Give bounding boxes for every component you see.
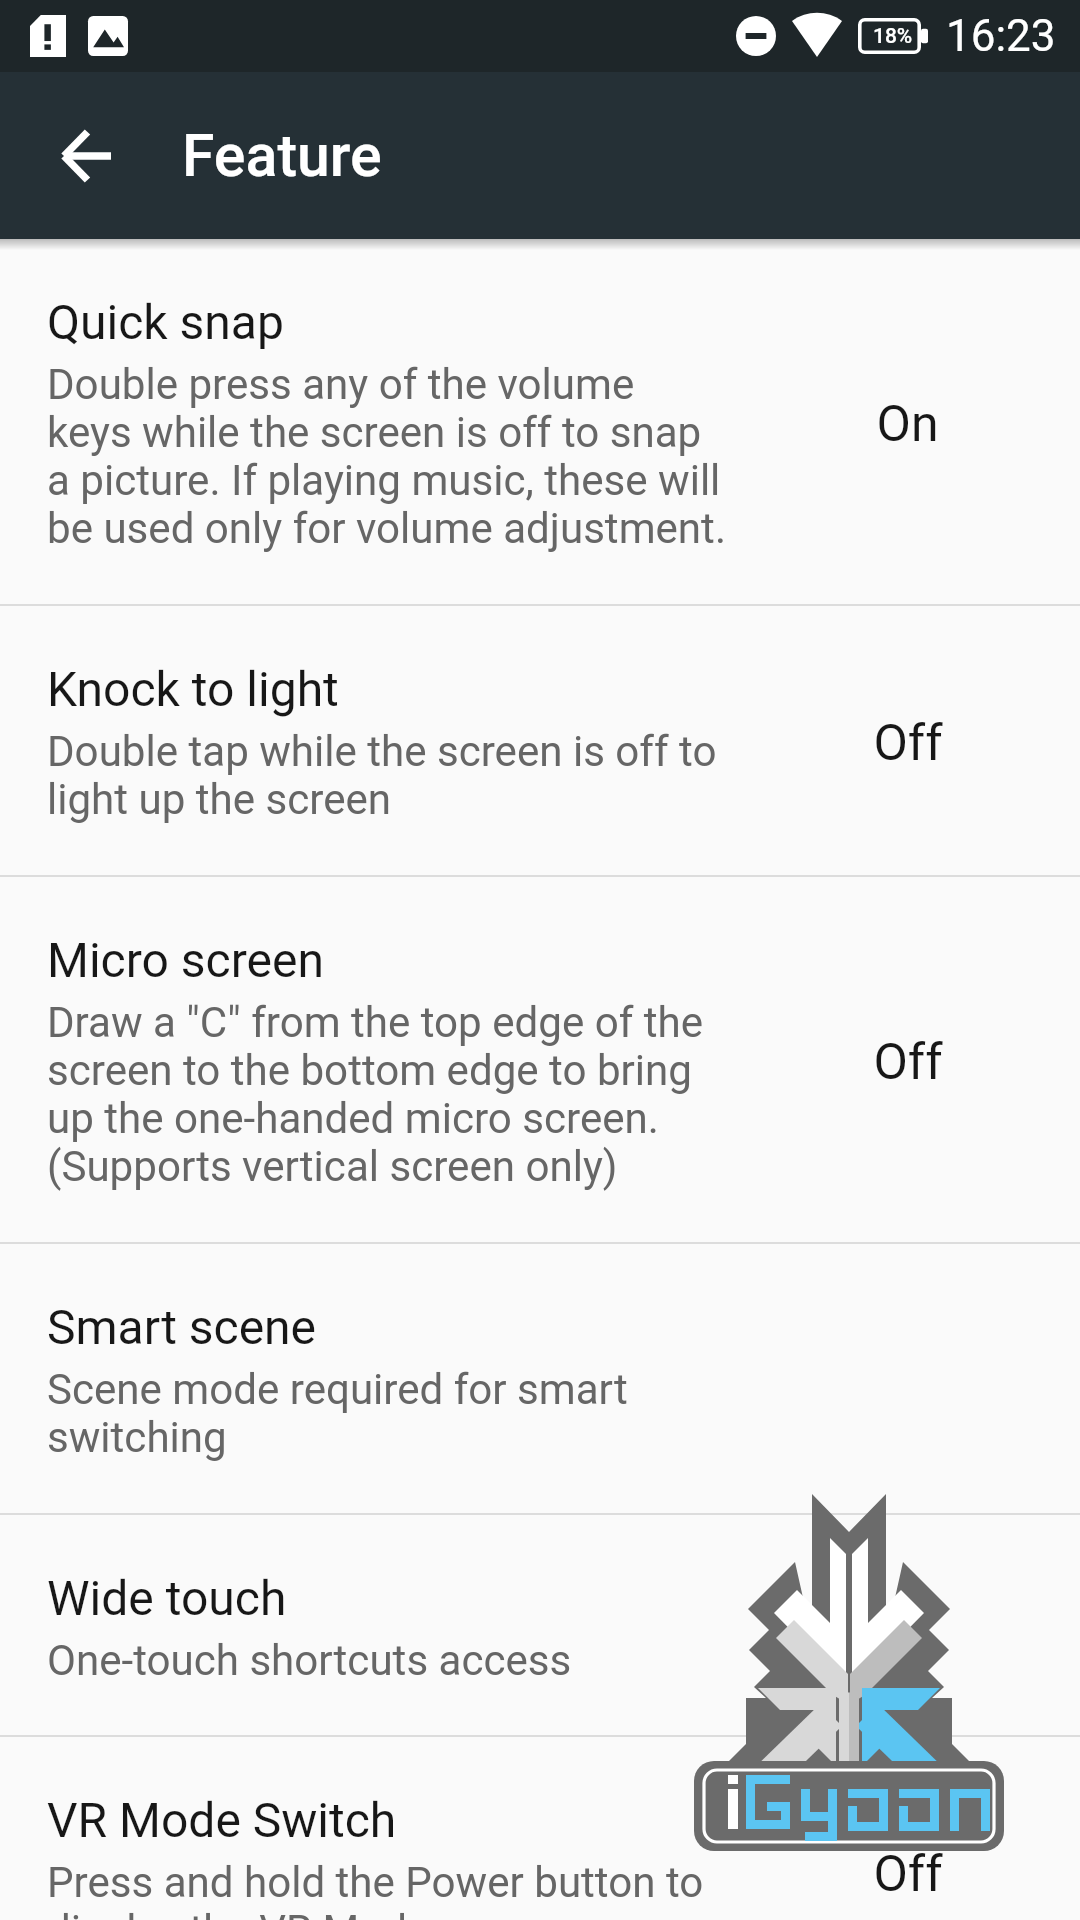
staticText: Double tap while the screen is off to li… xyxy=(47,727,717,825)
staticText: Off xyxy=(873,1845,943,1904)
staticText: 16:23 xyxy=(946,10,1056,62)
button[interactable]: VR Mode Switch xyxy=(0,1737,1080,1920)
staticText: Micro screen xyxy=(47,932,324,988)
staticText: Off xyxy=(873,1033,943,1092)
staticText: Knock to light xyxy=(47,661,339,717)
staticText: Quick snap xyxy=(47,294,284,350)
staticText: Scene mode required for smart switching xyxy=(47,1365,628,1463)
staticText: Feature xyxy=(182,121,382,190)
staticText: One-touch shortcuts access xyxy=(47,1636,572,1685)
button[interactable]: Quick snap xyxy=(0,239,1080,604)
staticText: 18% xyxy=(873,24,913,49)
button[interactable]: Micro screen xyxy=(0,877,1080,1242)
button[interactable]: Back xyxy=(38,108,134,204)
staticText: On xyxy=(876,395,939,454)
staticText: VR Mode Switch xyxy=(47,1792,397,1848)
button[interactable]: Knock to light xyxy=(0,606,1080,875)
button[interactable]: Smart scene xyxy=(0,1244,1080,1513)
staticText: Smart scene xyxy=(47,1299,317,1355)
button[interactable]: Wide touch xyxy=(0,1515,1080,1735)
staticText: Double press any of the volume keys whil… xyxy=(47,360,726,554)
staticText: Draw a "C" from the top edge of the scre… xyxy=(47,998,704,1192)
staticText: Wide touch xyxy=(47,1570,287,1626)
staticText: Press and hold the Power button to displ… xyxy=(47,1858,704,1920)
staticText: Off xyxy=(873,714,943,773)
